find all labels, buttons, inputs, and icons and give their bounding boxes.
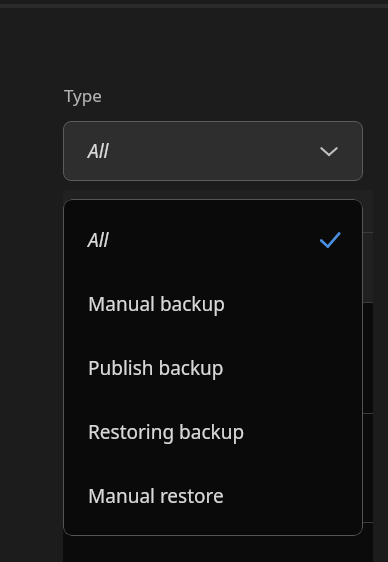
- button[interactable]: All: [63, 208, 363, 272]
- button[interactable]: Manual backup: [63, 272, 363, 336]
- staticText: Manual backup: [88, 291, 319, 317]
- staticText: Manual restore: [88, 483, 319, 509]
- staticText: All: [88, 227, 319, 253]
- button[interactable]: Manual restore: [63, 464, 363, 528]
- staticText: Publish backup: [88, 355, 319, 381]
- button[interactable]: Publish backup: [63, 336, 363, 400]
- staticText: Restoring backup: [88, 419, 319, 445]
- staticText: Type: [64, 84, 102, 107]
- button[interactable]: Restoring backup: [63, 400, 363, 464]
- button[interactable]: All: [63, 121, 363, 181]
- other: Selected: [319, 229, 341, 251]
- staticText: All: [88, 138, 109, 164]
